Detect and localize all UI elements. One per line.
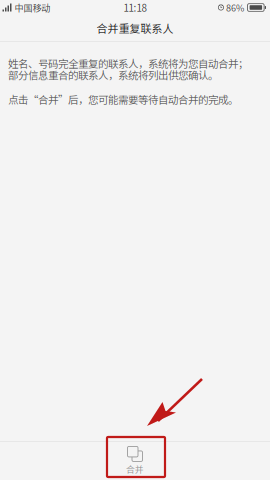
staticText: 合并重复联系人: [96, 20, 173, 36]
staticText: 11:18: [123, 0, 146, 15]
button[interactable]: 合并: [106, 442, 164, 480]
staticText: 86%: [226, 1, 244, 14]
staticText: 合并: [126, 462, 144, 475]
staticText: 姓名、号码完全重复的联系人，系统将为您自动合并；: [8, 56, 248, 71]
staticText: 部分信息重合的联系人，系统将列出供您确认。: [8, 67, 218, 82]
staticText: 中国移动: [14, 1, 50, 14]
staticText: 点击“合并”后，您可能需要等待自动合并的完成。: [8, 92, 238, 107]
